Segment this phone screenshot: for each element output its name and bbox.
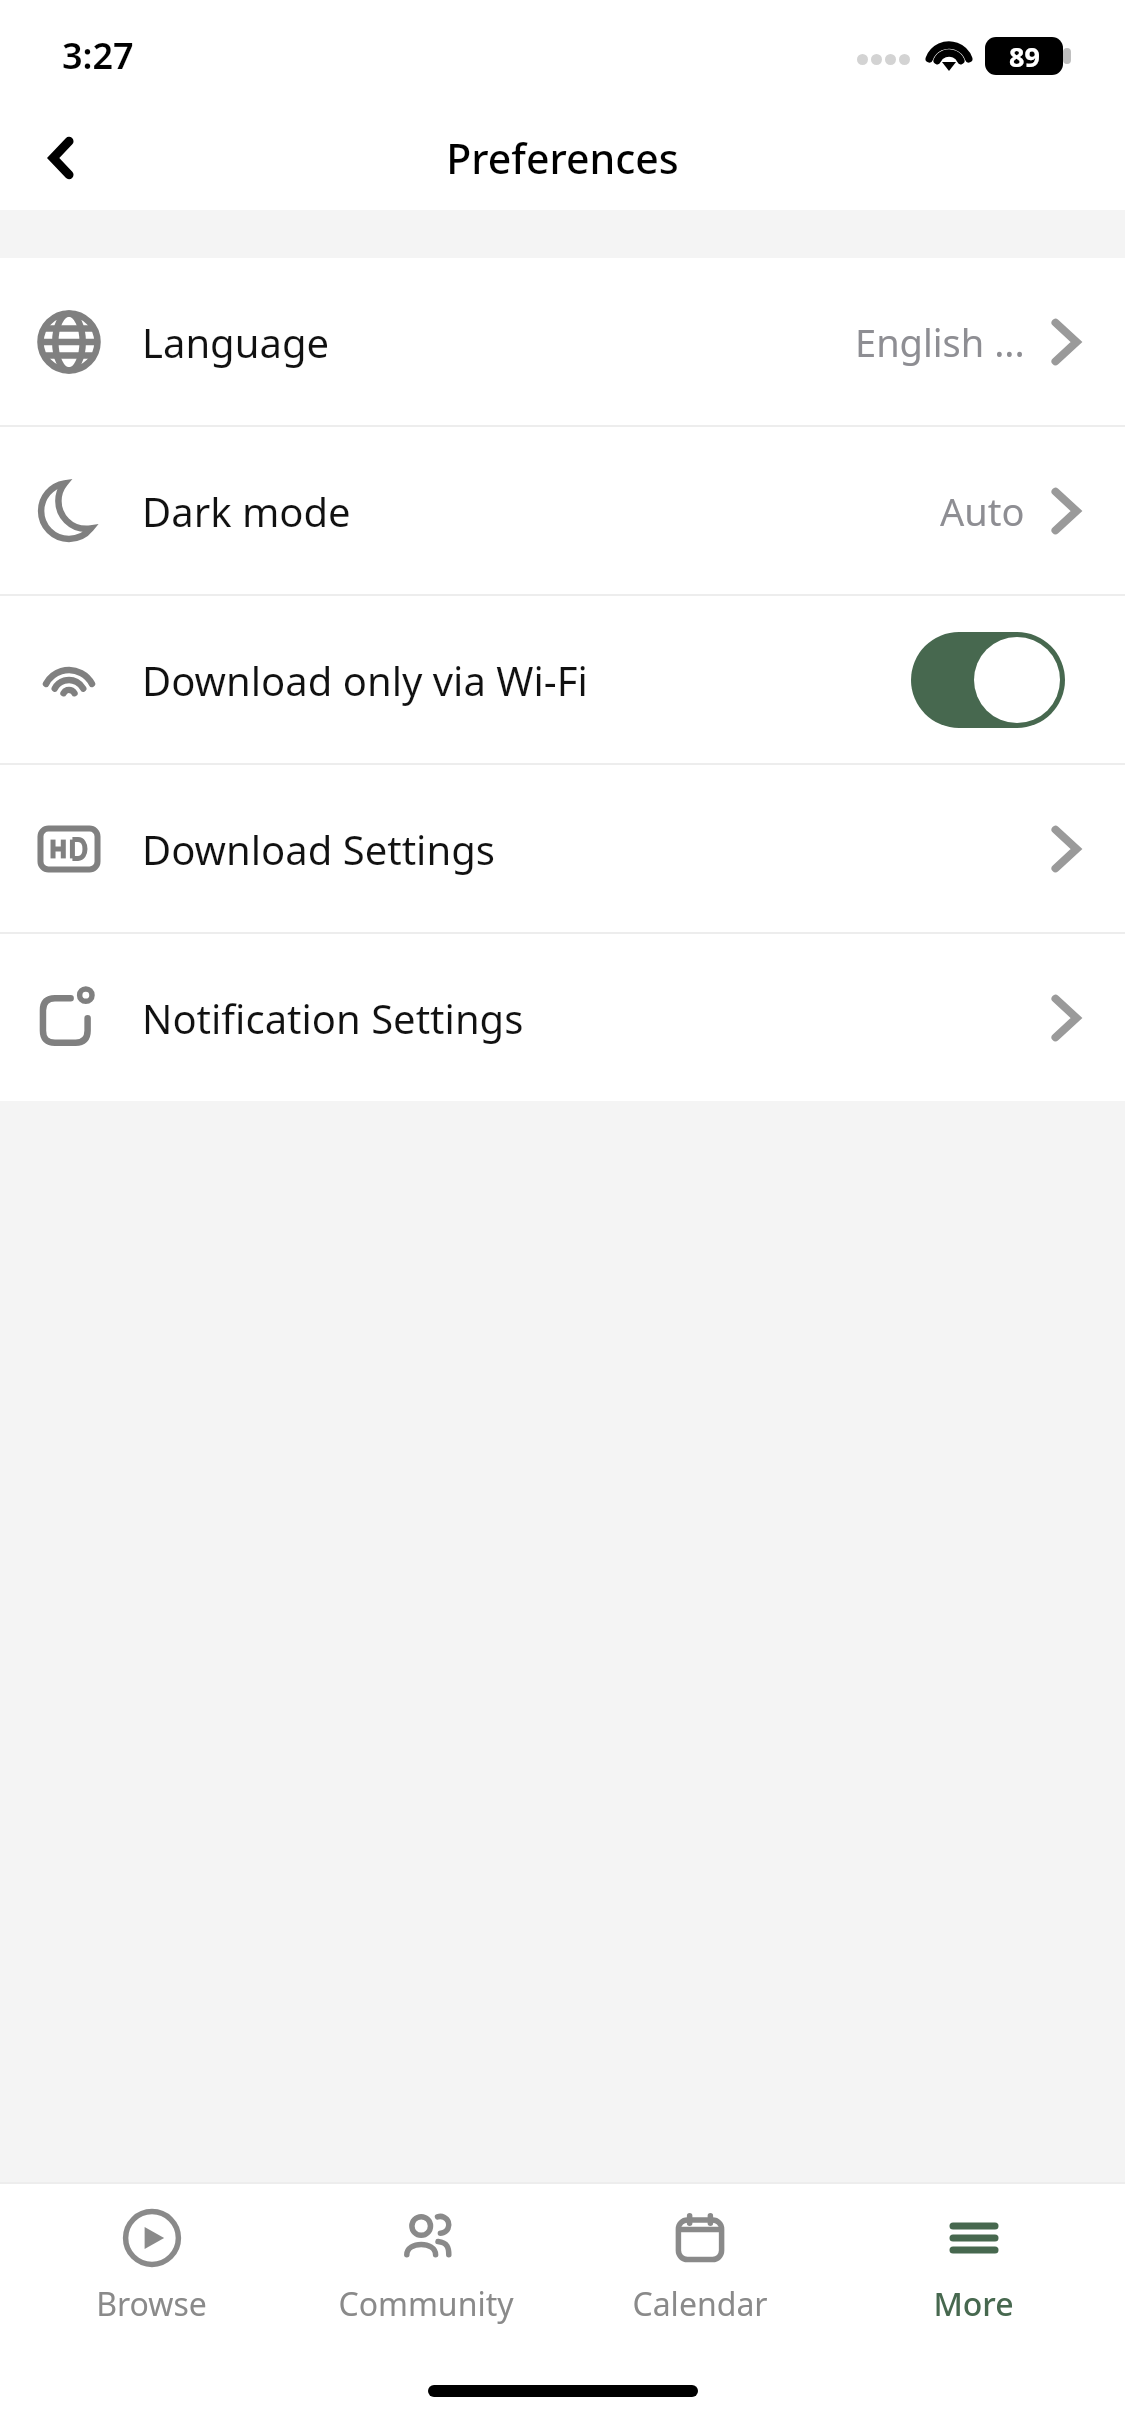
staticText: Auto <box>940 485 1025 537</box>
staticText: Dark mode <box>142 484 351 538</box>
button[interactable]: Language <box>0 258 1125 425</box>
button[interactable]: Notification Settings <box>0 934 1125 1101</box>
button[interactable]: Dark mode <box>0 427 1125 594</box>
button[interactable]: Calendar <box>577 2196 822 2362</box>
button[interactable]: Browse <box>29 2196 274 2362</box>
staticText: Language <box>142 315 330 369</box>
staticText: Community <box>338 2282 514 2326</box>
button[interactable]: Download only via Wi-Fi <box>0 596 1125 763</box>
button[interactable]: Download only via Wi-Fi toggle <box>911 632 1065 728</box>
staticText: Browse <box>96 2282 207 2326</box>
staticText: Download Settings <box>142 822 495 876</box>
button[interactable]: More <box>851 2196 1096 2362</box>
staticText: English ... <box>855 316 1025 368</box>
button[interactable]: Community <box>303 2196 548 2362</box>
staticText: More <box>933 2282 1014 2326</box>
button[interactable]: Download Settings <box>0 765 1125 932</box>
staticText: Download only via Wi-Fi <box>142 653 588 707</box>
button[interactable]: Back <box>14 110 110 206</box>
staticText: 89 <box>1009 38 1040 75</box>
staticText: 3:27 <box>62 31 134 80</box>
staticText: Preferences <box>446 130 679 186</box>
staticText: Calendar <box>632 2282 768 2326</box>
staticText: Notification Settings <box>142 991 524 1045</box>
